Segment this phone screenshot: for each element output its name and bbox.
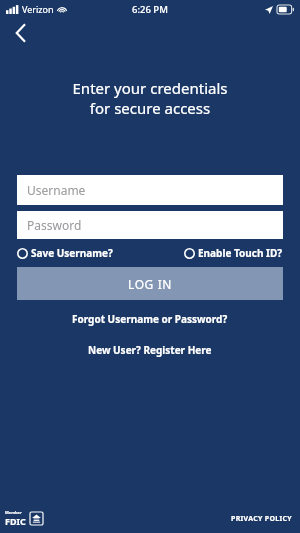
button[interactable]: New User? Register Here	[0, 343, 300, 357]
staticText: Verizon	[22, 3, 54, 15]
button[interactable]: Enable Touch ID?	[184, 244, 283, 262]
staticText: Save Username?	[31, 246, 113, 260]
staticText: New User? Register Here	[88, 343, 212, 357]
button[interactable]: Save Username?	[17, 244, 113, 262]
staticText: Enable Touch ID?	[198, 246, 283, 260]
staticText: Password	[27, 217, 82, 233]
button[interactable]: LOG IN	[17, 267, 283, 300]
staticText: FDIC	[5, 515, 26, 527]
staticText: Member	[5, 510, 22, 515]
staticText: LOG IN	[128, 276, 173, 292]
button[interactable]: Forgot Username or Password?	[0, 312, 300, 326]
button[interactable]: Back	[0, 18, 40, 48]
staticText: Forgot Username or Password?	[72, 312, 228, 326]
staticText: Username	[27, 182, 86, 198]
button[interactable]: Password	[17, 211, 283, 239]
button[interactable]: Username	[17, 175, 283, 205]
staticText: PRIVACY POLICY	[231, 514, 292, 524]
staticText: 6:26 PM	[132, 3, 168, 16]
staticText: Enter your credentials for secure access	[0, 78, 300, 118]
button[interactable]: PRIVACY POLICY	[231, 514, 292, 524]
